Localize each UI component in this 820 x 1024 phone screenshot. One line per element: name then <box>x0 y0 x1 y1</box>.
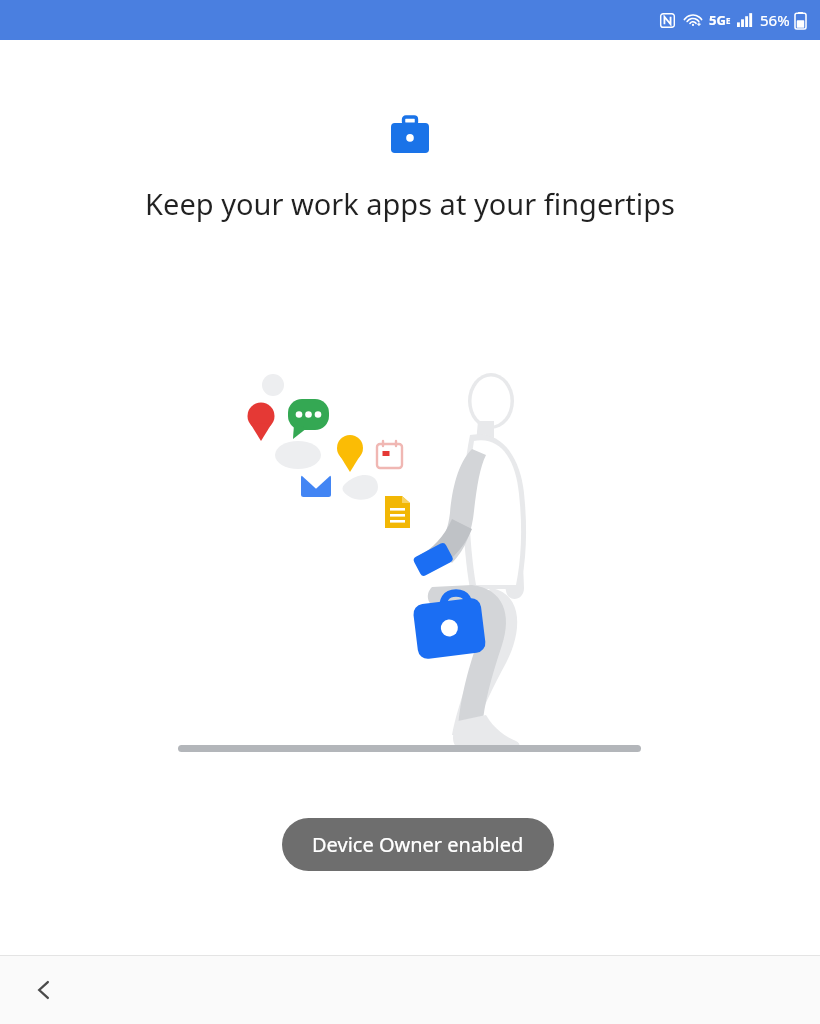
staticText: 5G <box>709 11 726 29</box>
button[interactable]: Device Owner enabled <box>282 818 554 871</box>
button[interactable]: Back <box>16 962 72 1018</box>
staticText: Keep your work apps at your fingertips <box>145 184 675 223</box>
staticText: Device Owner enabled <box>312 831 524 858</box>
staticText: E <box>726 15 731 26</box>
staticText: 56% <box>760 10 790 30</box>
staticText: Setting up your device… <box>298 838 523 865</box>
